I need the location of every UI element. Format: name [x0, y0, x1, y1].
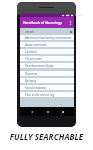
- button[interactable]: Abnormal involuntary movements: [20, 35, 74, 40]
- button[interactable]: Clear search: [68, 29, 74, 35]
- staticText: Handbook of Neurology: [23, 20, 66, 25]
- button[interactable]: Dizziness: [20, 71, 74, 76]
- staticText: Pain in the arm or leg: [25, 93, 55, 97]
- button[interactable]: Pain in the arm or leg: [20, 92, 74, 97]
- button[interactable]: Home: [44, 108, 51, 115]
- button[interactable]: Chronic pain: [20, 56, 74, 61]
- staticText: Cerebral: [25, 50, 37, 54]
- staticText: Chronic pain: [25, 57, 43, 61]
- staticText: Abnormal involuntary movements: [25, 36, 72, 40]
- staticText: Facial weakness: [25, 86, 47, 90]
- button[interactable]: Recent apps: [59, 108, 66, 115]
- staticText: FULLY SEARCHABLE: [0, 131, 93, 142]
- button[interactable]: Developmental delay: [20, 63, 74, 68]
- staticText: Acute confusion: [25, 43, 47, 47]
- button[interactable]: More options: [66, 19, 74, 27]
- button[interactable]: search: [20, 28, 74, 36]
- button[interactable]: Cerebral: [20, 49, 74, 54]
- button[interactable]: Facial weakness: [20, 85, 74, 90]
- staticText: Developmental delay: [25, 64, 54, 68]
- button[interactable]: Acute confusion: [20, 42, 74, 47]
- button[interactable]: Epilepsy: [20, 78, 74, 83]
- staticText: Epilepsy: [25, 79, 37, 83]
- staticText: search: [25, 30, 68, 34]
- button[interactable]: Back: [28, 108, 35, 115]
- staticText: Dizziness: [25, 72, 38, 76]
